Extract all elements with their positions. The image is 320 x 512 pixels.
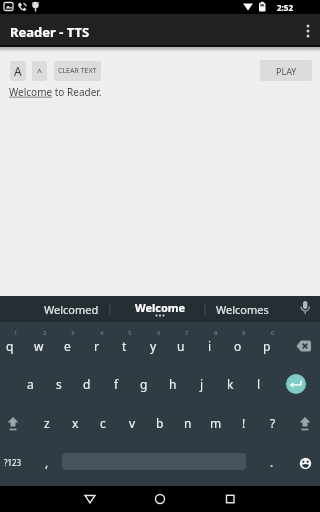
button[interactable]: ?123: [0, 448, 27, 476]
staticText: s: [56, 376, 62, 392]
button[interactable]: CLEAR TEXT: [54, 61, 101, 81]
button[interactable]: o: [224, 332, 252, 360]
button[interactable]: [106, 486, 213, 512]
button[interactable]: n: [174, 409, 202, 437]
staticText: CLEAR TEXT: [58, 66, 97, 76]
staticText: l: [257, 376, 261, 392]
staticText: ?: [270, 415, 276, 431]
staticText: Welcomes: [216, 302, 269, 317]
staticText: 2:52: [277, 2, 293, 13]
staticText: e: [64, 338, 71, 354]
staticText: ,: [45, 454, 49, 470]
button[interactable]: i: [196, 332, 224, 360]
staticText: v: [129, 415, 136, 431]
button[interactable]: t: [110, 332, 138, 360]
staticText: f: [114, 376, 119, 392]
button[interactable]: ,: [33, 448, 61, 476]
button[interactable]: v: [118, 409, 146, 437]
staticText: o: [234, 338, 242, 354]
button[interactable]: [213, 486, 320, 512]
staticText: 2: [43, 329, 47, 337]
staticText: g: [140, 376, 148, 392]
staticText: Welcomed: [44, 302, 99, 317]
staticText: 0: [271, 329, 275, 337]
button[interactable]: Welcome: [124, 296, 196, 318]
staticText: y: [150, 338, 157, 354]
button[interactable]: d: [73, 370, 101, 398]
staticText: u: [177, 338, 185, 354]
staticText: j: [200, 376, 204, 392]
staticText: 4: [100, 329, 104, 337]
staticText: z: [44, 415, 50, 431]
button[interactable]: k: [216, 370, 244, 398]
staticText: d: [83, 376, 91, 392]
button[interactable]: r: [82, 332, 110, 360]
staticText: b: [156, 415, 164, 431]
staticText: 3: [71, 329, 75, 337]
button[interactable]: f: [102, 370, 130, 398]
staticText: 6: [157, 329, 161, 337]
button[interactable]: .: [258, 448, 286, 476]
staticText: !: [242, 415, 246, 431]
staticText: 1: [14, 329, 18, 337]
button[interactable]: a: [16, 370, 44, 398]
button[interactable]: u: [167, 332, 195, 360]
staticText: k: [227, 376, 234, 392]
button[interactable]: l: [245, 370, 273, 398]
button[interactable]: h: [159, 370, 187, 398]
button[interactable]: j: [188, 370, 216, 398]
staticText: m: [210, 415, 222, 431]
button[interactable]: m: [202, 409, 230, 437]
staticText: i: [208, 338, 212, 354]
button[interactable]: [0, 486, 106, 512]
button[interactable]: w: [25, 332, 53, 360]
staticText: q: [6, 338, 14, 354]
staticText: n: [184, 415, 192, 431]
button[interactable]: ?: [259, 409, 287, 437]
staticText: PLAY: [276, 65, 297, 77]
button[interactable]: x: [61, 409, 89, 437]
staticText: 9: [242, 329, 246, 337]
button[interactable]: z: [33, 409, 61, 437]
staticText: 7: [185, 329, 189, 337]
staticText: r: [94, 338, 99, 354]
button[interactable]: s: [45, 370, 73, 398]
staticText: t: [122, 338, 127, 354]
staticText: Welcome: [135, 300, 186, 315]
staticText: Welcome to Reader.: [9, 85, 102, 99]
button[interactable]: !: [230, 409, 258, 437]
button[interactable]: e: [53, 332, 81, 360]
staticText: .: [270, 454, 274, 470]
staticText: Reader - TTS: [10, 23, 90, 41]
button[interactable]: g: [130, 370, 158, 398]
button[interactable]: q: [0, 332, 24, 360]
button[interactable]: Welcomed: [35, 296, 107, 322]
staticText: ^: [37, 65, 43, 77]
button[interactable]: y: [139, 332, 167, 360]
staticText: h: [169, 376, 177, 392]
button[interactable]: c: [89, 409, 117, 437]
button[interactable]: Welcomes: [206, 296, 278, 322]
button[interactable]: A: [10, 61, 26, 81]
staticText: 5: [128, 329, 132, 337]
button[interactable]: b: [146, 409, 174, 437]
staticText: A: [14, 63, 22, 79]
staticText: c: [100, 415, 106, 431]
staticText: 8: [214, 329, 218, 337]
staticText: p: [263, 338, 271, 354]
staticText: ?123: [4, 457, 22, 468]
staticText: w: [34, 338, 44, 354]
staticText: a: [27, 376, 34, 392]
button[interactable]: p: [253, 332, 281, 360]
button[interactable]: ^: [32, 61, 47, 81]
button[interactable]: PLAY: [260, 60, 312, 81]
staticText: x: [72, 415, 79, 431]
